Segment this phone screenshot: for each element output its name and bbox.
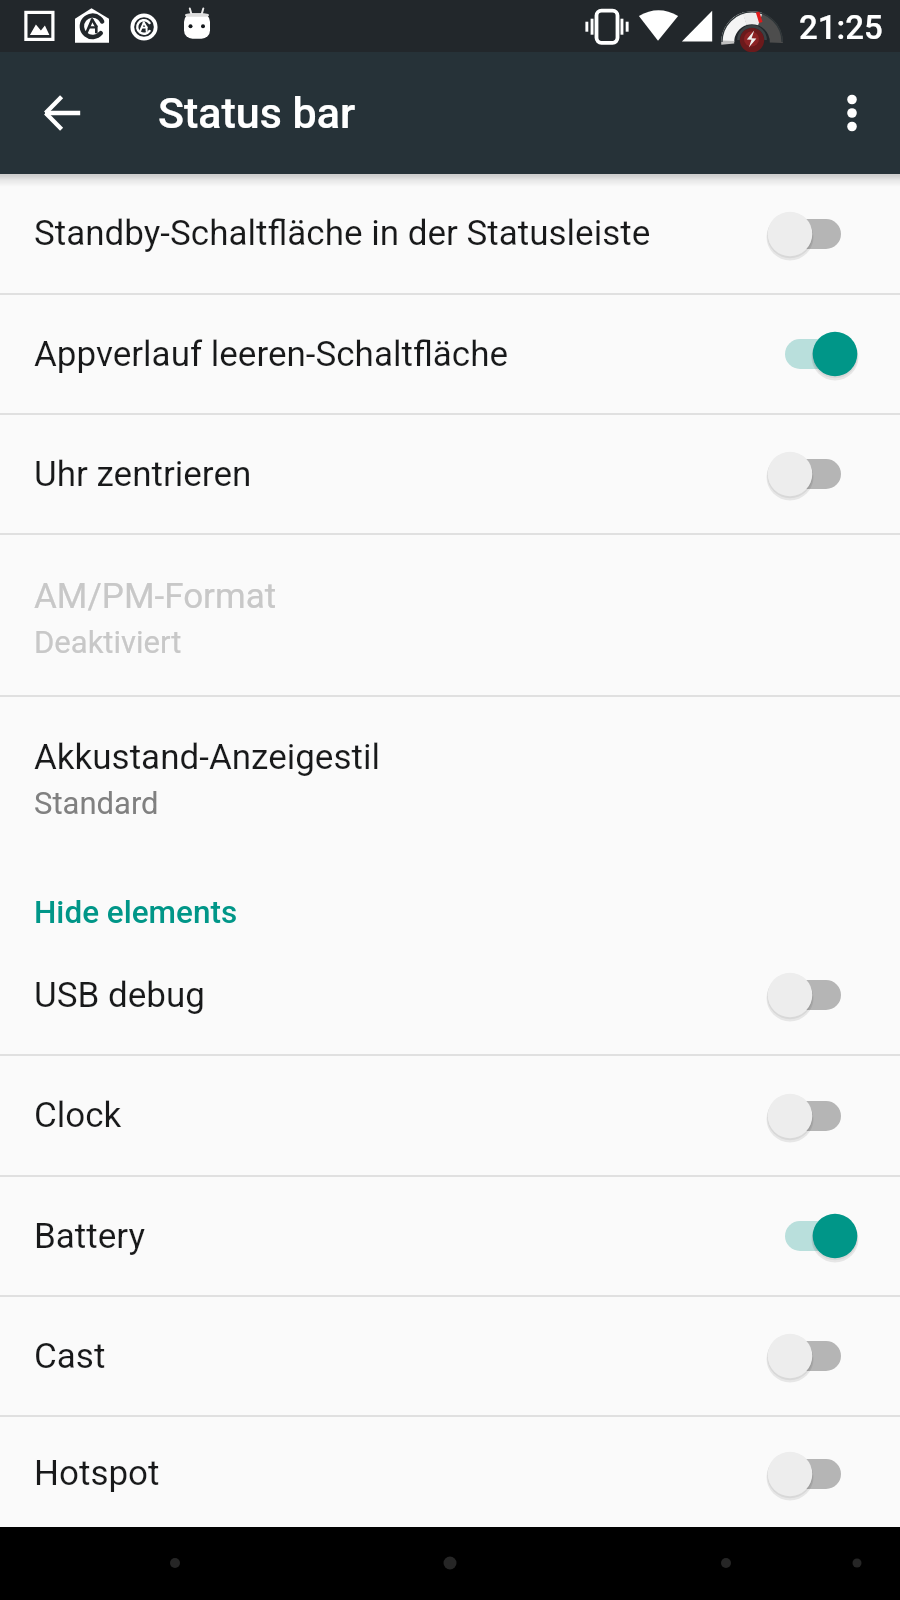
button[interactable]: Home xyxy=(414,1527,486,1600)
button[interactable]: AM/PM-Format xyxy=(0,535,900,695)
button[interactable]: USB debug xyxy=(0,936,900,1054)
button[interactable]: Recent apps xyxy=(690,1527,762,1600)
button[interactable]: Hotspot xyxy=(0,1417,900,1530)
staticText: Standard xyxy=(34,785,159,821)
staticText: 21:25 xyxy=(799,8,883,47)
staticText: Hotspot xyxy=(34,1453,777,1494)
button[interactable]: Battery xyxy=(0,1177,900,1295)
button[interactable]: Uhr zentrieren xyxy=(0,415,900,533)
staticText: Battery xyxy=(34,1216,777,1257)
staticText: Hide elements xyxy=(34,894,238,931)
button[interactable]: Back xyxy=(22,73,102,153)
staticText: Uhr zentrieren xyxy=(34,454,777,495)
staticText: Appverlauf leeren-Schaltfläche xyxy=(34,334,777,375)
staticText: Cast xyxy=(34,1336,777,1377)
staticText: AM/PM-Format xyxy=(34,576,277,617)
staticText: Clock xyxy=(34,1095,777,1136)
button[interactable]: Cast xyxy=(0,1297,900,1415)
staticText: Status bar xyxy=(158,88,356,138)
button[interactable]: Akkustand-Anzeigestil xyxy=(0,697,900,861)
staticText: Akkustand-Anzeigestil xyxy=(34,737,380,778)
staticText: Standby-Schaltfläche in der Statusleiste xyxy=(34,213,777,254)
button[interactable]: Menu xyxy=(821,1527,893,1600)
button[interactable]: Standby-Schaltfläche in der Statusleiste xyxy=(0,174,900,293)
button[interactable]: Appverlauf leeren-Schaltfläche xyxy=(0,295,900,413)
button[interactable]: Clock xyxy=(0,1056,900,1175)
button[interactable]: Back xyxy=(139,1527,211,1600)
staticText: USB debug xyxy=(34,975,777,1016)
staticText: Deaktiviert xyxy=(34,624,182,660)
button[interactable]: More options xyxy=(814,75,890,151)
